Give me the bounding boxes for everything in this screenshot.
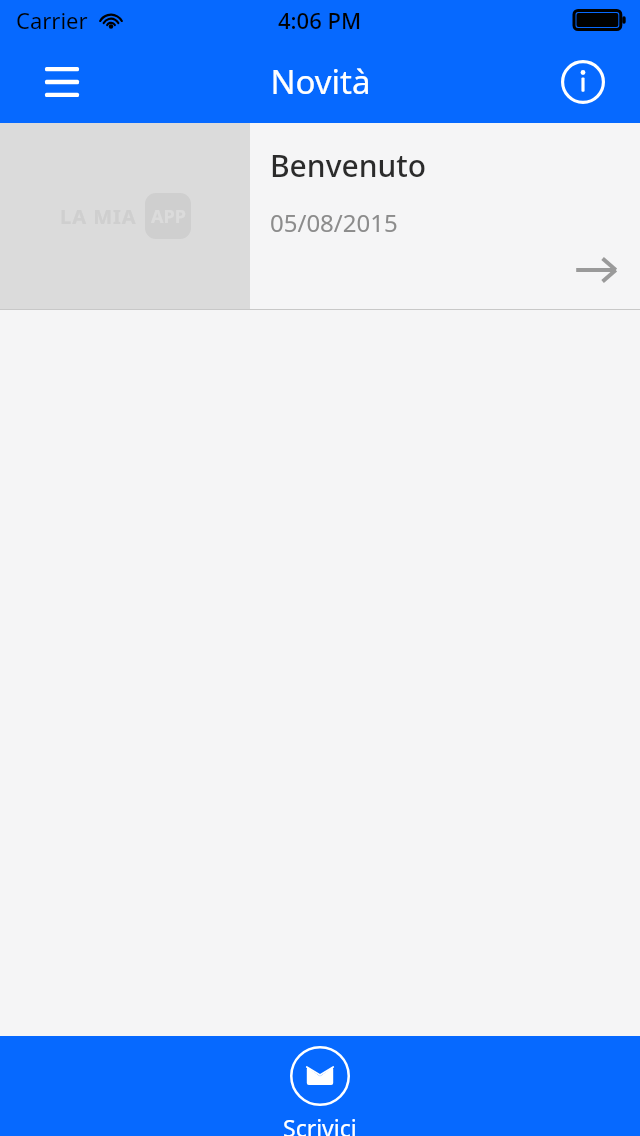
button[interactable]: Info [552, 51, 614, 113]
staticText: Scrivici [283, 1112, 357, 1136]
button[interactable]: Menu [26, 52, 98, 112]
staticText: Novità [270, 59, 371, 104]
staticText: 05/08/2015 [270, 206, 398, 239]
button[interactable]: LA MIA [0, 123, 640, 309]
staticText: APP [151, 204, 186, 229]
staticText: Benvenuto [270, 145, 427, 186]
staticText: LA MIA [60, 203, 137, 230]
staticText: Carrier [16, 5, 88, 35]
staticText: 4:06 PM [278, 5, 362, 35]
button[interactable]: Scrivici [283, 1046, 357, 1136]
